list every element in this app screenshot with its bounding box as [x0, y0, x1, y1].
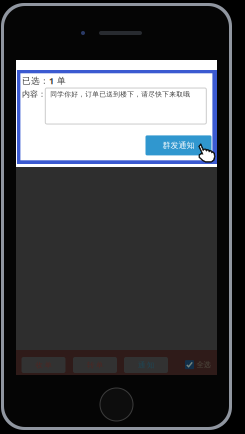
- button[interactable]: 全选: [185, 360, 210, 369]
- staticText: 已选：: [22, 75, 49, 86]
- button[interactable]: 通 知: [124, 357, 168, 373]
- button[interactable]: 收 单: [21, 357, 65, 373]
- staticText: 群发通知: [162, 140, 194, 150]
- staticText: 转 单: [87, 360, 103, 370]
- button[interactable]: 转 单: [73, 357, 117, 373]
- staticText: 1: [49, 75, 54, 87]
- staticText: 内容：: [22, 89, 46, 99]
- button[interactable]: 群发通知: [145, 135, 211, 155]
- staticText: 全选: [196, 360, 210, 369]
- staticText: 单: [54, 75, 66, 86]
- staticText: 通 知: [138, 360, 154, 370]
- staticText: 同学你好，订单已送到楼下，请尽快下来取哦: [50, 90, 190, 98]
- staticText: 收 单: [35, 360, 51, 370]
